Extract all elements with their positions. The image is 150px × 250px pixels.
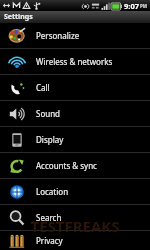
button[interactable]: Call [0,75,150,100]
button[interactable]: Search [0,205,150,230]
staticText: Search [36,212,62,223]
button[interactable]: Location [0,179,150,204]
button[interactable]: Display [0,127,150,152]
staticText: Call [36,82,50,93]
staticText: TESTFREAKS [30,216,120,236]
staticText: PM [140,3,148,9]
staticText: Sound [36,108,61,119]
staticText: Accounts & sync [36,160,97,171]
button[interactable]: Sound [0,101,150,126]
staticText: 9:07 [124,1,139,11]
button[interactable]: Personalize [0,23,150,48]
staticText: Display [36,134,64,145]
staticText: Wireless & networks [36,56,113,67]
button[interactable]: Wireless & networks [0,49,150,74]
staticText: Privacy [36,235,63,246]
button[interactable]: Accounts & sync [0,153,150,178]
staticText: Location [36,186,69,197]
button[interactable]: Privacy [0,231,150,250]
staticText: Personalize [36,30,80,41]
staticText: Settings [4,12,33,22]
